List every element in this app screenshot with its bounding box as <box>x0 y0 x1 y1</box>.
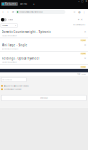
staticText: ⋮ <box>83 10 86 13</box>
staticText: ☆ <box>73 10 75 13</box>
button[interactable]: Fieldings - Optical flywheel <box>0 56 88 69</box>
staticText: Mini large - Single <box>1 43 27 47</box>
staticText: Memo <box>19 2 27 6</box>
staticText: – ◻ ✕ <box>78 0 87 3</box>
staticText: ⟳ <box>12 10 14 13</box>
button[interactable]: Forward <box>5 9 10 15</box>
button[interactable]: Returns <box>1 2 18 6</box>
button[interactable]: Memo <box>18 2 31 6</box>
staticText: Billing address will be used for shippin… <box>4 85 29 87</box>
button[interactable]: Toggle estimate <box>1 18 7 21</box>
staticText: 1,146 <box>81 39 85 41</box>
staticText: + <box>33 2 35 6</box>
staticText: estimate <box>8 19 13 21</box>
staticText: shop.example.com/cart/checkout <box>19 11 42 13</box>
button[interactable]: Checkout <box>1 95 86 101</box>
button[interactable]: New tab <box>32 2 36 6</box>
staticText: discount code <box>2 79 12 81</box>
staticText: Alloy wheel / carbon black <box>1 48 18 50</box>
button[interactable]: Dometic Counterweight - Tiptronic <box>0 29 88 42</box>
staticText: Total <box>77 73 80 75</box>
staticText: ✕ <box>84 43 86 46</box>
button[interactable]: Send me delivery updates <box>1 88 88 90</box>
button[interactable]: Favourite <box>77 18 80 21</box>
button[interactable]: Loading <box>1 24 17 28</box>
staticText: Adjust turbine / Aluminium <box>1 61 16 63</box>
button[interactable]: Billing address will be used for shippin… <box>1 85 88 87</box>
staticText: Adjust turbine / Aluminium <box>1 35 16 37</box>
staticText: Send me delivery updates <box>4 88 22 90</box>
staticText: Loading <box>2 25 8 26</box>
staticText: ✦ <box>77 18 79 21</box>
staticText: 1,146 <box>81 66 85 68</box>
staticText: Fieldings - Optical flywheel <box>1 57 39 60</box>
staticText: › <box>7 10 8 14</box>
staticText: Tercel Tweezers <box>72 24 85 26</box>
staticText: ◍ <box>78 10 80 13</box>
button[interactable]: Menu <box>82 9 87 15</box>
button[interactable]: shop.example.com/cart/checkout <box>15 10 65 14</box>
staticText: Returns <box>5 2 16 6</box>
staticText: ✕ <box>84 57 86 60</box>
staticText: ✕ <box>80 18 82 21</box>
button[interactable]: Back <box>0 9 5 15</box>
button[interactable]: Dismiss <box>80 18 83 21</box>
button[interactable]: Reload <box>10 9 15 15</box>
staticText: 1,146 <box>81 53 85 54</box>
staticText: Dometic Counterweight - Tiptronic <box>1 30 50 34</box>
staticText: ‹ <box>2 10 3 14</box>
button[interactable]: Bookmark <box>72 9 77 15</box>
button[interactable]: discount code <box>1 77 26 82</box>
staticText: ✕ <box>84 30 86 33</box>
button[interactable]: Account <box>77 9 82 15</box>
button[interactable]: Mini large - Single <box>0 42 88 56</box>
staticText: 129.00 <box>81 73 86 75</box>
staticText: Checkout <box>40 97 47 99</box>
